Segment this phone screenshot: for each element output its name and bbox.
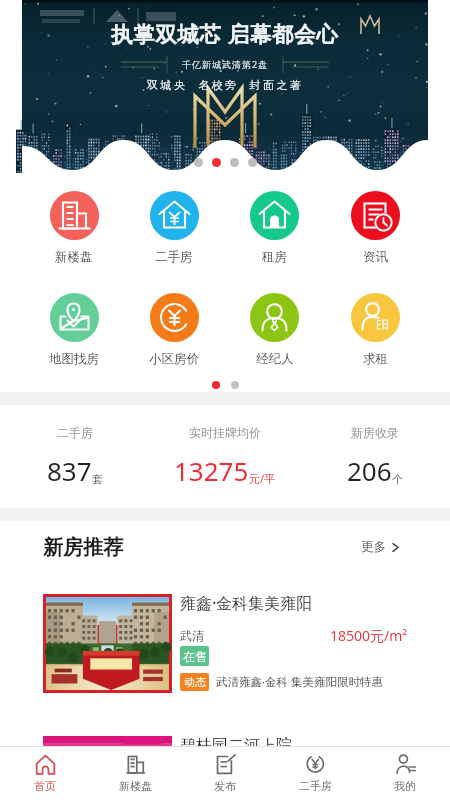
staticText: 发布 [214, 779, 236, 793]
staticText: 二手房 [299, 779, 332, 793]
button[interactable]: 小区房价 [124, 275, 224, 377]
staticText: 18500元/m² [330, 626, 408, 645]
button[interactable]: 地图找房 [24, 275, 124, 377]
button[interactable]: 我的 [360, 747, 450, 800]
staticText: 13275 [174, 453, 249, 488]
staticText: 元/平 [249, 471, 276, 486]
staticText: 206 [347, 453, 392, 488]
staticText: 新楼盘 [55, 249, 93, 265]
staticText: 实时挂牌均价 [189, 425, 261, 440]
staticText: 二手房 [155, 249, 193, 265]
button[interactable]: 发布 [180, 747, 270, 800]
staticText: 首页 [34, 779, 56, 793]
button[interactable]: 更多 [357, 533, 404, 561]
staticText: 雍鑫·金科集美雍阳 [180, 592, 313, 614]
button[interactable]: 雍鑫·金科集美雍阳 [0, 594, 450, 693]
staticText: 个 [392, 472, 403, 486]
staticText: 经纪人 [256, 351, 294, 367]
staticText: 更多 [361, 539, 386, 555]
staticText: 在售 [183, 649, 207, 664]
staticText: 执掌双城芯 启幕都会心 [111, 19, 339, 48]
button[interactable]: 实时挂牌均价 [150, 405, 300, 508]
staticText: 新房推荐 [43, 535, 123, 560]
staticText: 二手房 [57, 425, 93, 440]
staticText: 资讯 [363, 249, 388, 265]
staticText: 新楼盘 [119, 779, 152, 793]
staticText: 双城央 名校旁 封面之著 [147, 77, 304, 92]
staticText: 碧桂园二河上院 [180, 736, 292, 746]
button[interactable]: Promotion banner [22, 0, 428, 173]
button[interactable]: 二手房 [270, 747, 360, 800]
button[interactable]: 资讯 [325, 173, 426, 275]
staticText: 套 [92, 472, 103, 486]
staticText: 武清雍鑫·金科 集美雍阳限时特惠 [216, 674, 384, 690]
button[interactable]: 新房收录 [300, 405, 450, 508]
staticText: 新房收录 [351, 425, 399, 440]
staticText: 小区房价 [149, 351, 199, 367]
staticText: 千亿新城武清第2盘 [182, 58, 269, 70]
button[interactable]: 首页 [0, 747, 90, 800]
staticText: 地图找房 [49, 351, 99, 367]
staticText: 求租 [363, 351, 388, 367]
staticText: 我的 [394, 779, 416, 793]
button[interactable]: 租房 [224, 173, 325, 275]
button[interactable]: 碧桂园二河上院 [0, 736, 450, 746]
button[interactable]: 新楼盘 [24, 173, 124, 275]
button[interactable]: 新楼盘 [90, 747, 180, 800]
staticText: 武清 [180, 628, 204, 643]
staticText: 动态 [184, 675, 206, 689]
button[interactable]: 经纪人 [224, 275, 325, 377]
button[interactable]: 二手房 [124, 173, 224, 275]
staticText: 837 [47, 453, 92, 488]
button[interactable]: 二手房 [0, 405, 150, 508]
button[interactable]: 求租 [325, 275, 426, 377]
staticText: 租房 [262, 249, 287, 265]
